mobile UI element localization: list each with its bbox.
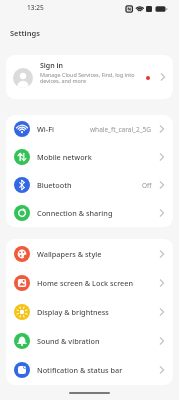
button[interactable]: Sign in [6, 55, 173, 99]
button[interactable]: Bluetooth [6, 171, 173, 199]
staticText: Sound & vibration [37, 336, 100, 346]
staticText: Manage Cloud Services, Find, log into de… [40, 71, 135, 85]
button[interactable]: Notification & status bar [6, 355, 173, 384]
button[interactable]: Home screen & Lock screen [6, 268, 173, 297]
button[interactable]: Display & brightness [6, 297, 173, 326]
staticText: 13:25 [27, 3, 44, 12]
staticText: Home screen & Lock screen [37, 278, 134, 288]
staticText: Display & brightness [37, 307, 109, 317]
staticText: Sign in [40, 61, 63, 71]
button[interactable]: Wi-Fi [6, 115, 173, 143]
button[interactable]: Mobile network [6, 143, 173, 171]
button[interactable]: Wallpapers & style [6, 239, 173, 268]
staticText: Off [142, 181, 152, 190]
staticText: Bluetooth [37, 180, 72, 190]
button[interactable]: Sound & vibration [6, 326, 173, 355]
staticText: Wallpapers & style [37, 249, 102, 259]
staticText: Wi-Fi [37, 124, 55, 134]
staticText: Notification & status bar [37, 365, 123, 375]
staticText: Mobile network [37, 152, 92, 162]
staticText: Connection & sharing [37, 208, 113, 218]
button[interactable]: Connection & sharing [6, 199, 173, 227]
staticText: Settings [10, 28, 40, 38]
staticText: whale_ft_caral_2_5G [90, 125, 152, 134]
